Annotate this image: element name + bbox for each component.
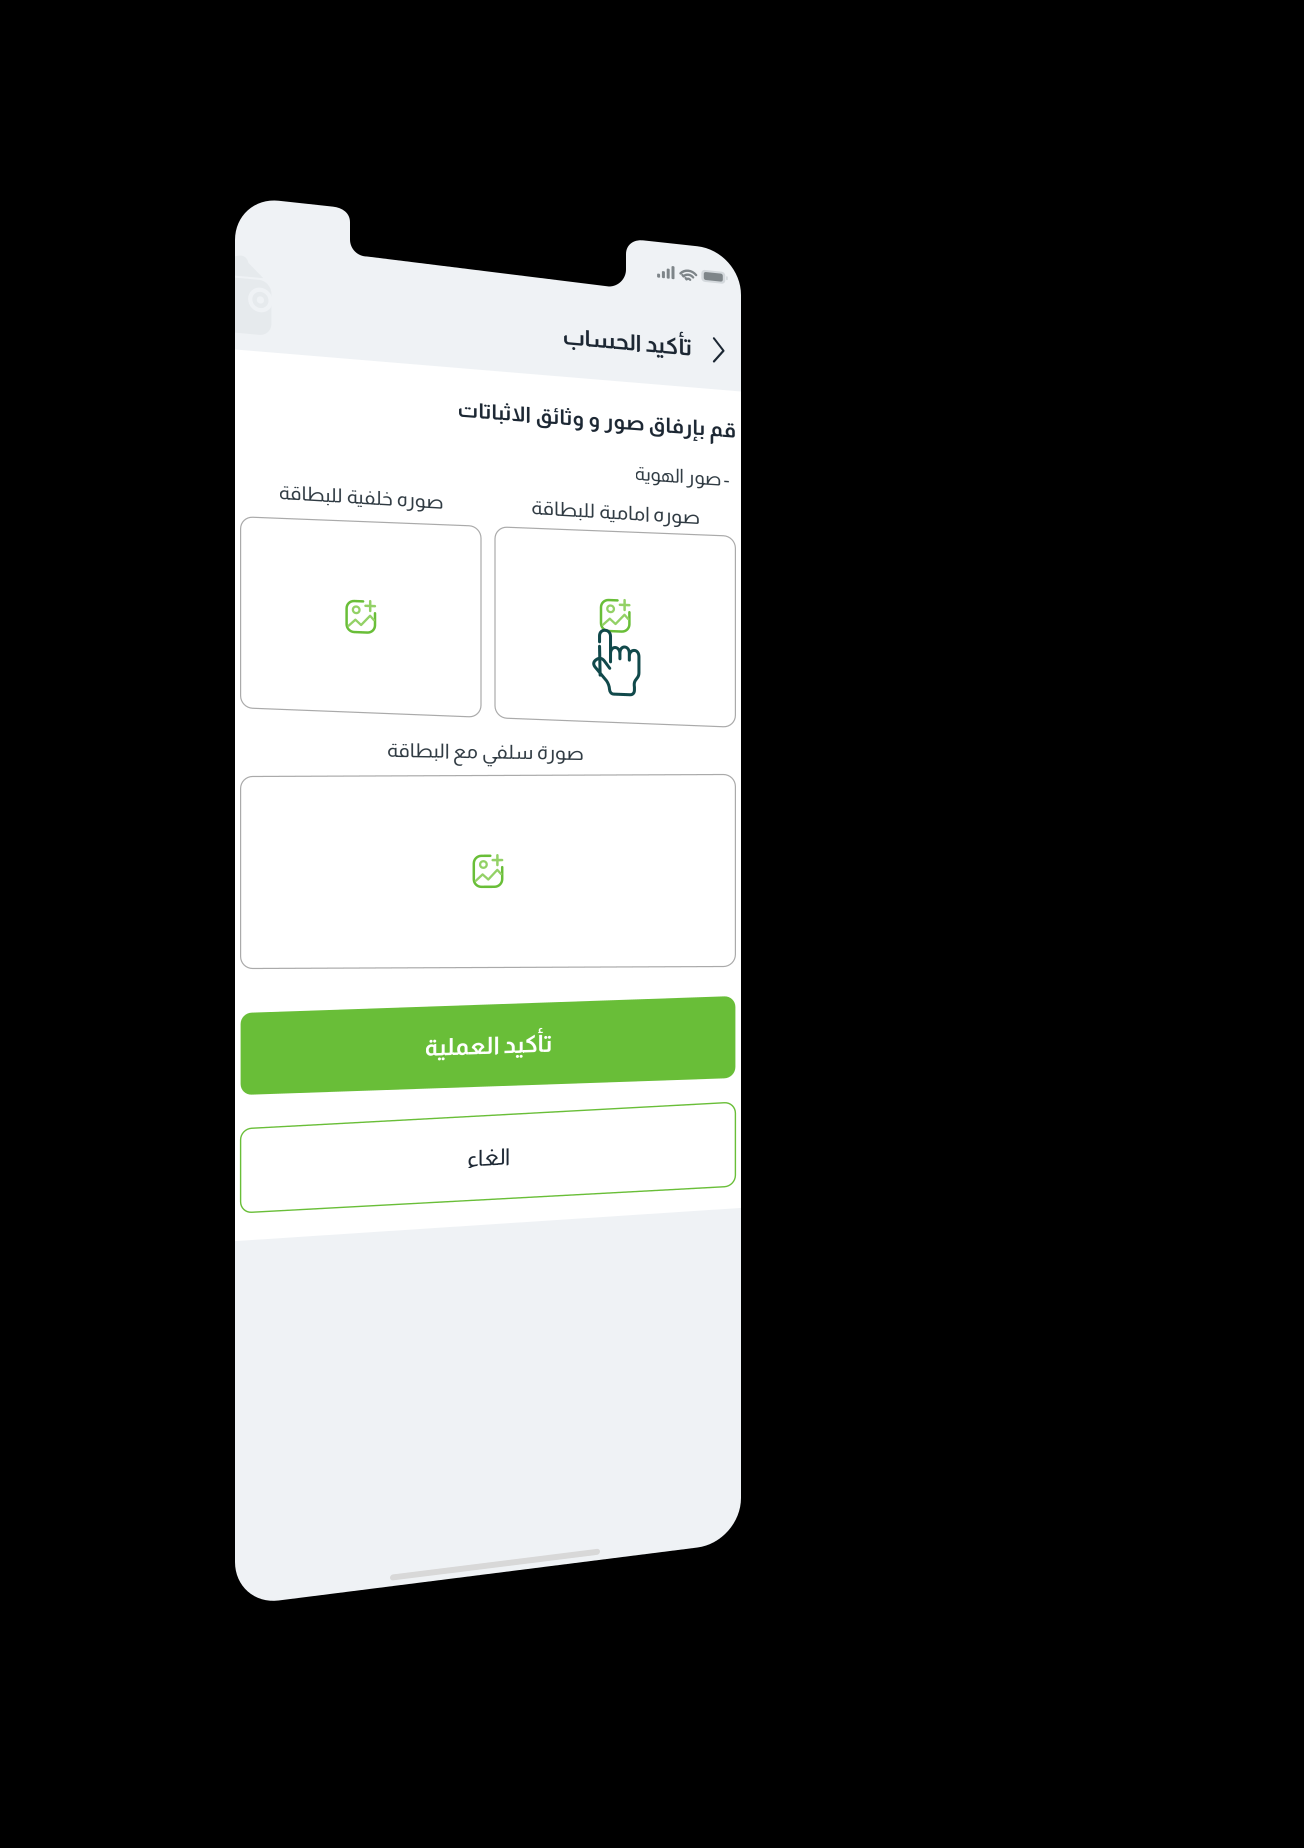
staticText: صوره امامية للبطاقة <box>531 496 700 518</box>
button[interactable]: Upload photo <box>241 776 735 968</box>
staticText: تأكيد العملية <box>424 1041 552 1067</box>
staticText: تأكيد الحساب <box>562 323 692 349</box>
button[interactable]: تأكيد العملية <box>241 1013 735 1095</box>
button[interactable]: Upload photo <box>495 527 735 718</box>
staticText: صورة سلفي مع البطاقة <box>386 738 583 761</box>
button[interactable]: الغاء <box>241 1129 735 1213</box>
button[interactable]: Upload photo <box>241 517 481 708</box>
staticText: صوره خلفية للبطاقة <box>278 480 443 503</box>
staticText: الغاء <box>466 1158 509 1183</box>
button[interactable]: Back <box>703 330 735 368</box>
staticText: - صور الهوية <box>634 461 729 482</box>
staticText: قم بإرفاق صور و وثائق الاثباتات <box>457 396 736 420</box>
